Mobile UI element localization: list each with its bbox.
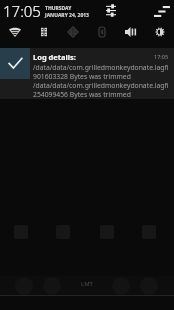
staticText: 254099456 Bytes was trimmed	[33, 90, 131, 99]
button[interactable]: Brightness	[145, 22, 174, 48]
staticText: /data/data/com.grilledmonkeydonate.lagfi…	[33, 81, 169, 90]
staticText: 17:05	[154, 53, 169, 60]
staticText: /data/data/com.grilledmonkeydonate.lagfi…	[33, 63, 169, 72]
button[interactable]: Log details:	[0, 48, 174, 99]
staticText: JANUARY 24, 2013	[45, 12, 89, 19]
button[interactable]: Wi-Fi	[0, 22, 29, 48]
button[interactable]: Location	[58, 22, 87, 48]
button[interactable]: Bluetooth	[87, 22, 116, 48]
button[interactable]: Mobile data	[29, 22, 58, 48]
staticText: THURSDAY	[45, 5, 72, 12]
staticText: 17:05	[3, 1, 41, 21]
staticText: 901603328 Bytes was trimmed	[33, 72, 131, 81]
button[interactable]: Signal strength	[150, 2, 170, 22]
staticText: Log details:	[33, 52, 76, 62]
button[interactable]: Sound	[116, 22, 145, 48]
staticText: LMT	[81, 280, 93, 288]
button[interactable]: Settings	[103, 1, 119, 17]
